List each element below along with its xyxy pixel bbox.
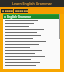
staticText: ■■■■ ■■ [15,10,28,13]
button[interactable] [3,28,60,31]
button[interactable] [3,31,60,34]
staticText: ■ ■■■■ [2,10,13,13]
button[interactable]: Toolbar item [1,9,13,13]
button[interactable] [3,40,60,43]
button[interactable]: Learn English Grammar [0,0,64,7]
button[interactable] [3,61,60,64]
button[interactable] [3,49,60,52]
button[interactable] [3,64,60,67]
button[interactable] [3,55,60,58]
button[interactable]: Section icon [3,14,60,19]
button[interactable] [3,34,60,37]
button[interactable] [3,25,60,28]
staticText: Learn English Grammar [12,1,52,6]
button[interactable] [3,19,60,22]
button[interactable] [3,58,60,61]
button[interactable] [3,52,60,55]
button[interactable] [3,37,60,40]
button[interactable] [3,22,60,25]
staticText: English Grammar [7,15,32,19]
button[interactable]: Toolbar item [14,9,28,13]
button[interactable] [3,43,60,46]
button[interactable] [3,46,60,49]
